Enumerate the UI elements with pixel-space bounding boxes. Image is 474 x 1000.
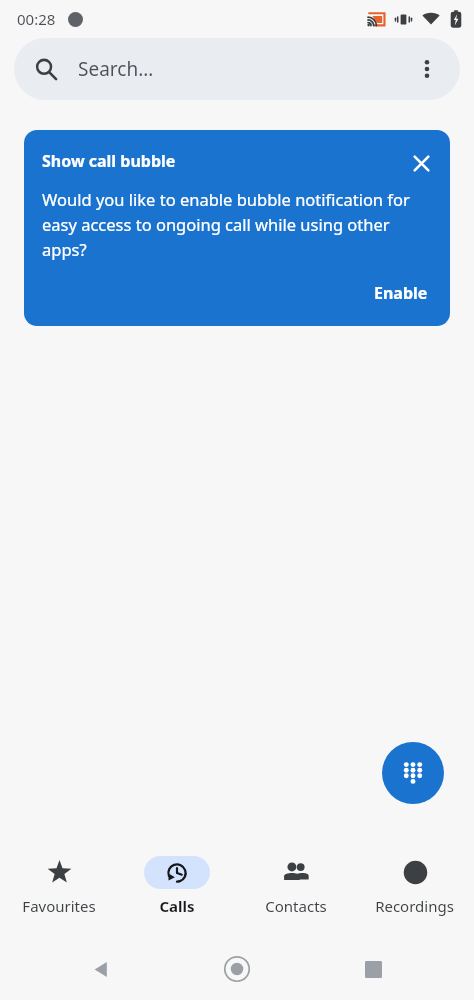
button[interactable]: Favourites xyxy=(0,843,118,916)
button[interactable]: Enable xyxy=(368,278,434,308)
staticText: Recordings xyxy=(375,896,454,916)
staticText: Would you like to enable bubble notifica… xyxy=(42,188,434,260)
staticText: Show call bubble xyxy=(42,150,408,172)
button[interactable]: Search… xyxy=(14,38,460,100)
button[interactable]: Recordings xyxy=(355,843,474,916)
staticText: Calls xyxy=(159,896,195,916)
staticText: Enable xyxy=(374,282,428,304)
button[interactable]: Close xyxy=(408,150,434,176)
staticText: 00:28 xyxy=(17,9,56,29)
staticText: Search… xyxy=(78,56,154,82)
button[interactable]: Home xyxy=(214,946,260,992)
button[interactable]: Contacts xyxy=(236,843,355,916)
button[interactable]: Back xyxy=(78,946,124,992)
button[interactable]: Show call bubble xyxy=(24,130,450,326)
staticText: Favourites xyxy=(22,896,96,916)
staticText: Contacts xyxy=(265,896,327,916)
button[interactable]: Recents xyxy=(350,946,396,992)
button[interactable]: Calls xyxy=(118,843,236,916)
button[interactable]: More options xyxy=(410,52,444,86)
button[interactable]: Dialpad xyxy=(382,742,444,804)
